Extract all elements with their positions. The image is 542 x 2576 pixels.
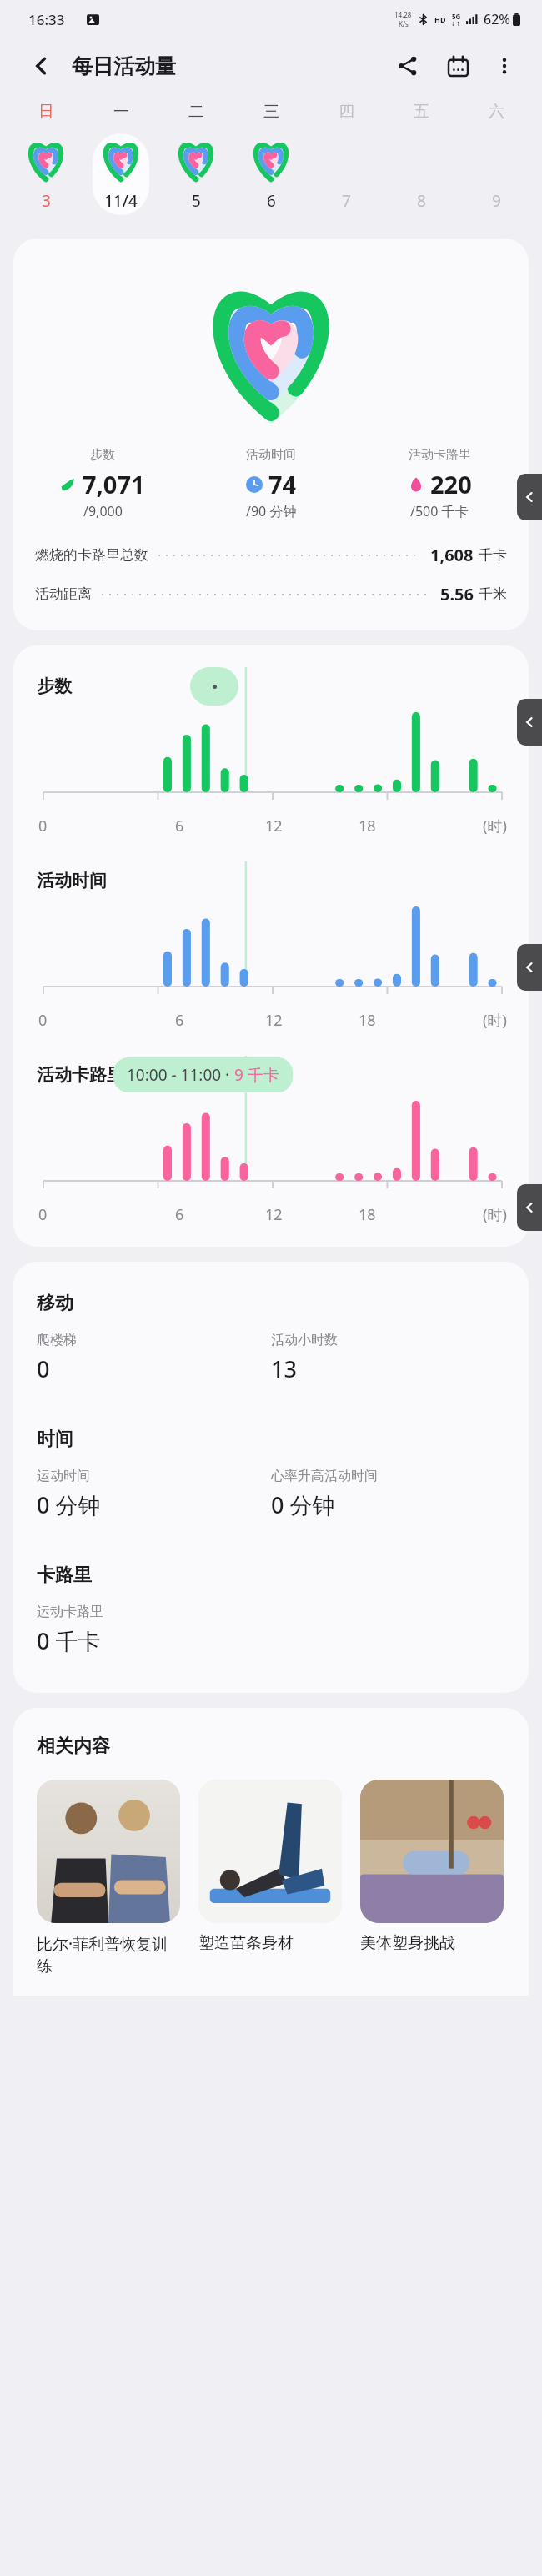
staticText: 9: [492, 190, 501, 212]
staticText: 美体塑身挑战: [360, 1933, 455, 1953]
staticText: 0 分钟: [37, 1489, 101, 1520]
button[interactable]: 运动卡路里: [37, 1604, 271, 1656]
button[interactable]: 爬楼梯: [37, 1332, 271, 1384]
button[interactable]: More options: [485, 47, 524, 85]
button[interactable]: 三: [233, 93, 309, 227]
staticText: /9,000: [83, 502, 123, 520]
staticText: 0: [38, 1204, 48, 1225]
staticText: 日: [38, 102, 54, 122]
staticText: 活动时间: [246, 447, 296, 463]
staticText: 13: [271, 1353, 297, 1384]
staticText: 活动卡路里: [409, 447, 471, 463]
button[interactable]: 心率升高活动时间: [271, 1468, 505, 1520]
staticText: 相关内容: [37, 1735, 110, 1758]
staticText: 0: [38, 816, 48, 836]
button[interactable]: 燃烧的卡路里总数: [35, 544, 507, 566]
button[interactable]: 活动卡路里: [355, 447, 524, 520]
staticText: 16:33: [28, 10, 65, 29]
staticText: 14.28: [394, 10, 412, 19]
button[interactable]: 活动时间: [187, 447, 355, 520]
staticText: HD: [434, 14, 446, 24]
button[interactable]: 四: [309, 93, 384, 227]
staticText: 74: [268, 468, 297, 500]
button[interactable]: 二: [158, 93, 233, 227]
staticText: /90 分钟: [246, 502, 297, 520]
staticText: ↓↑: [451, 21, 461, 28]
staticText: 塑造苗条身材: [198, 1933, 294, 1953]
staticText: 千米: [479, 585, 507, 603]
staticText: 12: [265, 816, 283, 836]
staticText: 心率升高活动时间: [271, 1468, 378, 1484]
button[interactable]: 一: [83, 93, 158, 227]
staticText: 四: [339, 102, 354, 122]
staticText: 3: [42, 190, 51, 212]
staticText: 步数: [37, 675, 72, 697]
staticText: 燃烧的卡路里总数: [35, 546, 148, 564]
staticText: 五: [414, 102, 429, 122]
button[interactable]: 活动距离: [35, 583, 507, 605]
staticText: 6: [175, 1010, 184, 1031]
staticText: 0: [37, 1353, 50, 1384]
button[interactable]: 六: [459, 93, 534, 227]
staticText: 活动卡路里: [37, 1064, 124, 1086]
button[interactable]: Previous: [517, 1184, 542, 1231]
staticText: 卡路里: [37, 1564, 92, 1587]
staticText: 运动时间: [37, 1468, 90, 1484]
button[interactable]: 活动时间: [13, 861, 529, 1031]
staticText: 9 千卡: [234, 1064, 279, 1086]
staticText: 爬楼梯: [37, 1332, 77, 1348]
staticText: 一: [113, 102, 129, 122]
button[interactable]: 五: [384, 93, 459, 227]
staticText: 6: [175, 1204, 184, 1225]
staticText: 步数: [90, 447, 115, 463]
staticText: 6: [267, 190, 276, 212]
button[interactable]: Back: [23, 48, 60, 84]
staticText: 12: [265, 1204, 283, 1225]
button[interactable]: Previous: [517, 474, 542, 520]
button[interactable]: 步数: [18, 447, 187, 520]
button[interactable]: 美体塑身挑战: [360, 1780, 504, 1953]
button[interactable]: 运动时间: [37, 1468, 271, 1520]
staticText: 10:00 - 11:00 ·: [127, 1064, 234, 1086]
button[interactable]: Previous: [517, 699, 542, 746]
staticText: 18: [359, 816, 376, 836]
staticText: (时): [483, 1204, 507, 1225]
staticText: 活动距离: [35, 585, 92, 603]
staticText: 18: [359, 1204, 376, 1225]
staticText: 活动时间: [37, 870, 107, 891]
button[interactable]: 比尔·菲利普恢复训 练: [37, 1780, 180, 1976]
button[interactable]: Calendar: [439, 47, 477, 85]
staticText: 11/4: [104, 190, 138, 212]
staticText: 千卡: [479, 546, 507, 564]
button[interactable]: 塑造苗条身材: [198, 1780, 342, 1953]
staticText: 5: [192, 190, 201, 212]
button[interactable]: 活动卡路里: [13, 1056, 529, 1225]
button[interactable]: 日: [8, 93, 83, 227]
button[interactable]: 活动小时数: [271, 1332, 505, 1384]
staticText: 每日活动量: [72, 53, 176, 79]
button[interactable]: 步数: [13, 667, 529, 836]
button[interactable]: Previous: [517, 944, 542, 991]
staticText: 时间: [37, 1428, 73, 1451]
staticText: 1,608: [430, 544, 474, 566]
staticText: 0 千卡: [37, 1625, 101, 1656]
staticText: 二: [188, 102, 204, 122]
staticText: K/s: [399, 19, 409, 28]
staticText: 220: [430, 468, 472, 500]
staticText: 0: [38, 1010, 48, 1031]
staticText: 移动: [37, 1292, 73, 1315]
button[interactable]: 步数: [13, 239, 529, 630]
staticText: (时): [483, 816, 507, 836]
staticText: 7: [342, 190, 351, 212]
staticText: 7,071: [83, 468, 145, 500]
staticText: (时): [483, 1010, 507, 1031]
button[interactable]: Share: [389, 47, 427, 85]
staticText: /500 千卡: [410, 502, 469, 520]
staticText: 12: [265, 1010, 283, 1031]
staticText: 62%: [484, 10, 510, 28]
staticText: 6: [175, 816, 184, 836]
staticText: 活动小时数: [271, 1332, 338, 1348]
staticText: 运动卡路里: [37, 1604, 103, 1620]
staticText: 比尔·菲利普恢复训 练: [37, 1933, 168, 1976]
staticText: 0 分钟: [271, 1489, 335, 1520]
